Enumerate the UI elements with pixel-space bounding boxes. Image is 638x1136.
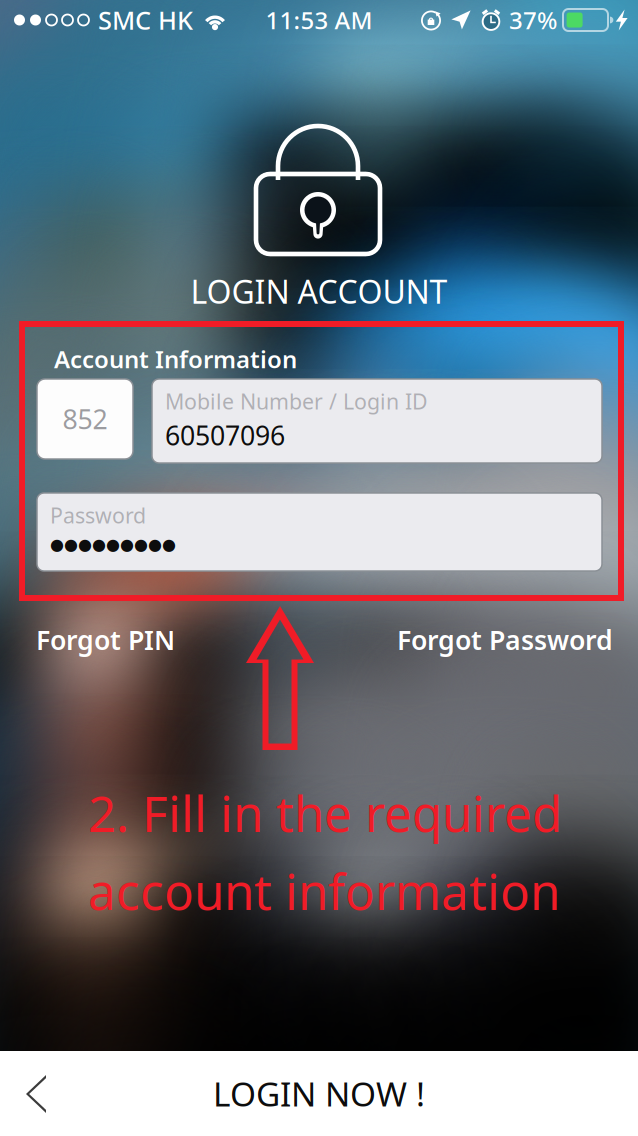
staticText: account information (88, 858, 560, 923)
staticText: Password (50, 501, 146, 529)
staticText: 60507096 (165, 417, 285, 453)
staticText: 11:53 AM (265, 4, 372, 36)
staticText: Account Information (54, 343, 297, 375)
staticText: Forgot PIN (36, 622, 175, 657)
button[interactable]: Password (37, 493, 602, 571)
staticText: 2. Fill in the required (88, 780, 562, 845)
button[interactable]: Forgot PIN (36, 622, 175, 657)
button[interactable]: Forgot Password (397, 622, 613, 657)
staticText: ●●●●●●●●● (50, 535, 176, 553)
button[interactable]: LOGIN NOW ! (164, 1051, 474, 1136)
staticText: Mobile Number / Login ID (165, 387, 428, 415)
staticText: 37% (509, 4, 557, 36)
staticText: Forgot Password (397, 622, 613, 657)
button[interactable]: Back (0, 1051, 74, 1136)
button[interactable]: Mobile Number / Login ID (152, 379, 602, 463)
staticText: SMC HK (98, 3, 193, 37)
staticText: LOGIN NOW ! (213, 1071, 425, 1116)
staticText: LOGIN ACCOUNT (190, 270, 447, 312)
staticText: 852 (62, 401, 107, 437)
button[interactable]: 852 (37, 379, 133, 459)
